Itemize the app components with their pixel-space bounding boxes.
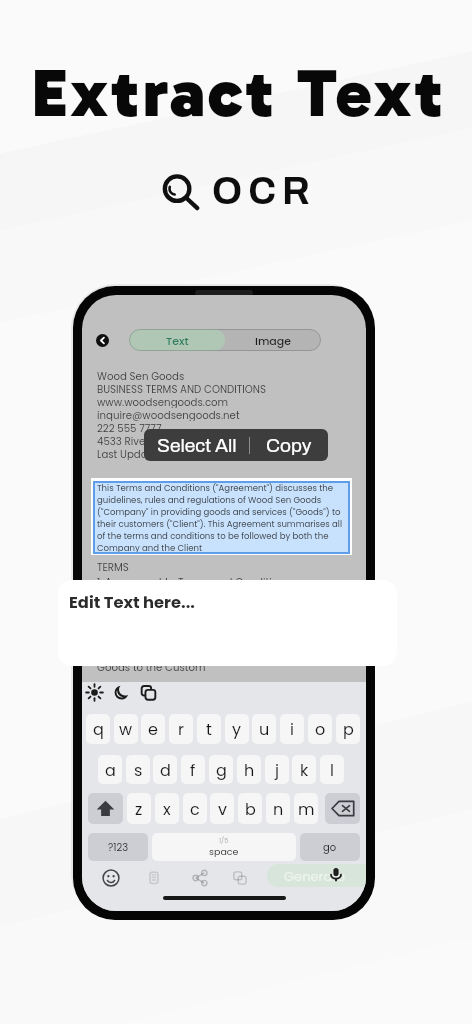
button[interactable]: Clipboard: [145, 869, 163, 887]
button[interactable]: r: [169, 714, 193, 744]
staticText: Edit Text here...: [69, 591, 195, 614]
staticText: w: [119, 718, 133, 740]
button[interactable]: d: [153, 755, 177, 784]
button[interactable]: a: [98, 755, 122, 784]
staticText: Last Updated: October 21, 2054: [97, 447, 253, 460]
staticText: Copy: [266, 435, 312, 456]
button[interactable]: Text: [129, 329, 225, 351]
button[interactable]: h: [237, 755, 261, 784]
button[interactable]: t: [197, 714, 221, 744]
staticText: 1. Agreement to Terms and Conditions: [97, 575, 291, 588]
button[interactable]: f: [181, 755, 205, 784]
button[interactable]: z: [127, 793, 151, 824]
staticText: q: [93, 718, 104, 740]
staticText: j: [275, 759, 279, 781]
button[interactable]: Emoji: [102, 869, 120, 887]
button[interactable]: k: [292, 755, 316, 784]
staticText: n: [273, 798, 284, 820]
staticText: ?123: [108, 840, 129, 854]
button[interactable]: m: [294, 793, 318, 824]
staticText: b: [245, 798, 256, 820]
button[interactable]: Select All: [144, 429, 249, 461]
staticText: Text: [166, 333, 189, 348]
staticText: k: [300, 759, 309, 781]
button[interactable]: Light theme: [85, 683, 104, 702]
button[interactable]: Generate: [267, 864, 366, 887]
button[interactable]: Shift: [88, 793, 123, 824]
staticText: Select All: [157, 435, 237, 456]
staticText: inquire@woodsengoods.net: [97, 408, 240, 421]
button[interactable]: ?123: [88, 833, 148, 861]
button[interactable]: v: [210, 793, 234, 824]
button[interactable]: Dark theme: [112, 683, 131, 702]
button[interactable]: Copy: [250, 429, 328, 461]
staticText: BUSINESS TERMS AND CONDITIONS: [97, 382, 266, 395]
staticText: o: [315, 718, 326, 740]
button[interactable]: n: [266, 793, 290, 824]
button[interactable]: Share: [191, 869, 209, 887]
button[interactable]: 1/5: [152, 833, 296, 861]
button[interactable]: u: [252, 714, 276, 744]
staticText: f: [190, 759, 196, 781]
button[interactable]: x: [155, 793, 179, 824]
staticText: Wood Sen Goods: [97, 369, 185, 382]
button[interactable]: l: [320, 755, 344, 784]
staticText: x: [163, 798, 171, 820]
staticText: p: [343, 718, 354, 740]
staticText: r: [178, 718, 184, 740]
button[interactable]: Back: [96, 334, 109, 347]
staticText: i: [290, 718, 294, 740]
staticText: Extract Text: [3, 52, 472, 134]
staticText: m: [298, 798, 315, 820]
button[interactable]: Image: [225, 329, 321, 351]
staticText: e: [148, 718, 158, 740]
button[interactable]: i: [280, 714, 304, 744]
button[interactable]: s: [126, 755, 150, 784]
button[interactable]: Edit Text here...: [58, 580, 397, 666]
button[interactable]: o: [308, 714, 332, 744]
staticText: www.woodsengoods.com: [97, 395, 229, 408]
staticText: c: [190, 798, 200, 820]
staticText: 222 555 7777: [97, 421, 162, 434]
button[interactable]: Translate: [231, 869, 249, 887]
staticText: d: [160, 759, 171, 781]
staticText: Generate: [284, 867, 345, 885]
staticText: 1/5: [219, 836, 229, 845]
staticText: 4533 River Road: [97, 434, 179, 447]
staticText: v: [218, 798, 227, 820]
staticText: u: [259, 718, 270, 740]
button[interactable]: p: [336, 714, 360, 744]
staticText: g: [216, 759, 227, 781]
staticText: l: [330, 759, 334, 781]
button[interactable]: c: [183, 793, 207, 824]
staticText: h: [244, 759, 255, 781]
staticText: TERMS: [97, 560, 129, 573]
button[interactable]: e: [141, 714, 165, 744]
staticText: This Terms and Conditions ("Agreement") …: [97, 482, 343, 554]
button[interactable]: Voice input: [326, 864, 346, 884]
button[interactable]: go: [300, 833, 360, 861]
staticText: OCR: [212, 171, 316, 212]
button[interactable]: y: [225, 714, 249, 744]
staticText: Image: [255, 333, 292, 348]
button[interactable]: b: [238, 793, 262, 824]
button[interactable]: g: [209, 755, 233, 784]
staticText: Goods to the Custom: [97, 660, 206, 673]
staticText: go: [323, 840, 337, 854]
staticText: y: [232, 718, 242, 740]
button[interactable]: j: [265, 755, 289, 784]
button[interactable]: Backspace: [325, 793, 360, 824]
button[interactable]: q: [86, 714, 110, 744]
staticText: space: [209, 845, 239, 858]
staticText: t: [206, 718, 212, 740]
button[interactable]: Clipboard: [139, 683, 158, 702]
other: Search: [157, 169, 203, 213]
button[interactable]: This Terms and Conditions ("Agreement") …: [93, 481, 350, 554]
button[interactable]: w: [114, 714, 138, 744]
staticText: z: [135, 798, 143, 820]
staticText: a: [105, 759, 116, 781]
staticText: s: [134, 759, 143, 781]
